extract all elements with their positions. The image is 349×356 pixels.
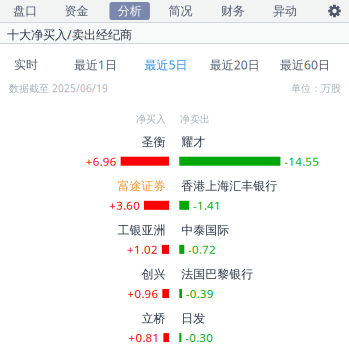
staticText: -0.39 — [186, 286, 214, 301]
button[interactable]: 最近5日 — [135, 46, 197, 84]
staticText: 圣衡 — [141, 134, 165, 149]
staticText: 日发 — [181, 311, 205, 326]
staticText: 实时 — [14, 57, 38, 72]
button[interactable]: 盘口 — [2, 0, 48, 22]
staticText: -14.55 — [284, 153, 319, 169]
staticText: 创兴 — [141, 267, 165, 282]
staticText: 中泰国际 — [181, 223, 229, 238]
button[interactable]: 分析 — [107, 0, 153, 22]
staticText: 最近20日 — [210, 57, 260, 73]
button[interactable]: 实时 — [0, 46, 57, 84]
staticText: +6.96 — [86, 153, 117, 169]
staticText: 数据截至 2025/06/19 — [9, 81, 108, 95]
staticText: 十大净买入/卖出经纪商 — [7, 26, 132, 43]
staticText: 最近5日 — [145, 57, 188, 73]
button[interactable]: 最近20日 — [204, 46, 266, 84]
button[interactable]: Settings — [319, 0, 349, 22]
staticText: 盘口 — [13, 3, 37, 18]
staticText: +3.60 — [109, 197, 140, 213]
staticText: 分析 — [118, 3, 142, 18]
button[interactable]: 最近60日 — [274, 46, 336, 84]
staticText: 耀才 — [181, 134, 205, 149]
staticText: 净买入 — [136, 113, 166, 125]
staticText: -0.72 — [188, 242, 216, 257]
staticText: +1.02 — [127, 242, 158, 257]
staticText: +0.81 — [129, 330, 160, 345]
staticText: 富途证券 — [117, 178, 165, 194]
staticText: 净卖出 — [180, 113, 210, 125]
staticText: 香港上海汇丰银行 — [181, 178, 277, 194]
staticText: -0.30 — [185, 330, 213, 345]
button[interactable]: 财务 — [210, 0, 256, 22]
staticText: 简况 — [168, 3, 192, 18]
staticText: 工银亚洲 — [117, 223, 165, 238]
staticText: 最近60日 — [280, 57, 330, 73]
button[interactable]: 异动 — [262, 0, 308, 22]
staticText: 立桥 — [141, 311, 165, 326]
staticText: 资金 — [64, 3, 88, 18]
button[interactable]: 简况 — [157, 0, 203, 22]
staticText: 单位：万股 — [291, 82, 341, 95]
staticText: -1.41 — [193, 197, 221, 213]
button[interactable]: 最近1日 — [65, 46, 127, 84]
staticText: 异动 — [273, 3, 297, 18]
staticText: +0.96 — [127, 286, 158, 301]
button[interactable]: 资金 — [53, 0, 99, 22]
staticText: 财务 — [221, 3, 245, 18]
staticText: 法国巴黎银行 — [181, 267, 253, 282]
staticText: 最近1日 — [74, 57, 117, 73]
